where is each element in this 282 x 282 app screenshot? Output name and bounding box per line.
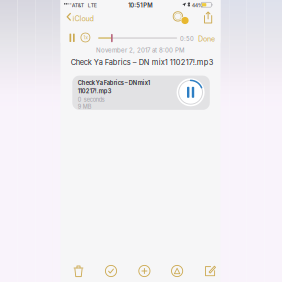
staticText: 9 MB xyxy=(78,103,92,110)
button[interactable]: Pause download xyxy=(177,78,205,106)
button[interactable]: Playback speed xyxy=(79,31,92,45)
staticText: LTE xyxy=(88,2,97,9)
staticText: 1x xyxy=(83,35,87,40)
staticText: AT&T xyxy=(72,2,84,9)
button[interactable]: iCloud xyxy=(64,10,100,24)
staticText: Done xyxy=(198,35,215,43)
button[interactable]: Mark as read xyxy=(101,261,121,281)
button[interactable]: Share xyxy=(201,10,215,25)
staticText: 0:50 xyxy=(180,35,194,42)
staticText: iCloud xyxy=(73,14,94,23)
staticText: 44% xyxy=(192,2,203,9)
staticText: 110217!.mp3 xyxy=(78,88,112,95)
button[interactable]: Unread filter xyxy=(172,10,190,24)
staticText: 0 seconds xyxy=(78,96,105,103)
button[interactable]: Flag xyxy=(167,261,187,281)
staticText: November 2, 2017 at 8:00 PM xyxy=(96,47,185,54)
button[interactable]: Move to folder xyxy=(134,261,154,281)
staticText: Check Ya Fabrics – DN mix1 xyxy=(78,79,150,86)
button[interactable]: Delete xyxy=(68,261,88,281)
button[interactable]: Compose xyxy=(200,261,220,281)
button[interactable]: Pause xyxy=(65,31,78,45)
staticText: Check Ya Fabrics – DN mix1 110217!.mp3 xyxy=(71,58,214,67)
staticText: 10:51 PM xyxy=(128,2,152,9)
button[interactable]: Done xyxy=(195,31,216,45)
